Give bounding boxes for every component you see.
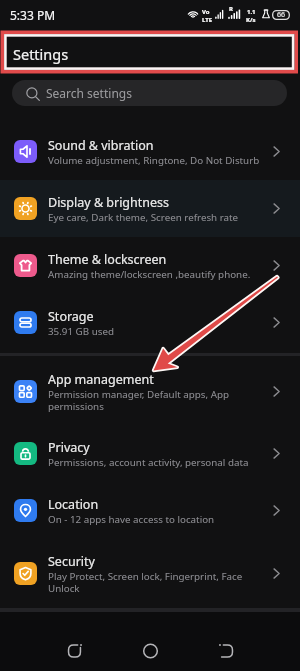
button[interactable]: Security	[0, 539, 300, 608]
button[interactable]: Home	[115, 631, 185, 671]
button[interactable]: Search settings	[12, 80, 287, 106]
staticText: Theme & lockscreen	[48, 251, 167, 268]
staticText: R	[229, 5, 233, 13]
staticText: Storage	[48, 308, 94, 325]
staticText: On - 12 apps have access to location	[48, 513, 215, 526]
staticText: Amazing theme/lockscreen ,beautify phone…	[48, 268, 251, 281]
button[interactable]: Sound & vibration	[0, 123, 300, 180]
staticText: Volume adjustment, Ringtone, Do Not Dist…	[48, 154, 260, 167]
button[interactable]: Display & brightness	[0, 180, 300, 237]
staticText: Vo	[202, 8, 210, 16]
staticText: Display & brightness	[48, 194, 170, 211]
staticText: K/s	[246, 16, 256, 24]
staticText: 35.91 GB used	[48, 325, 114, 338]
staticText: Eye care, Dark theme, Screen refresh rat…	[48, 211, 239, 224]
staticText: Search settings	[46, 85, 132, 101]
staticText: Permissions, account activity, personal …	[48, 456, 249, 469]
staticText: Privacy	[48, 439, 90, 456]
staticText: Settings	[13, 44, 69, 64]
button[interactable]: Theme & lockscreen	[0, 237, 300, 294]
staticText: Security	[48, 553, 95, 570]
staticText: Sound & vibration	[48, 137, 154, 154]
staticText: Permission manager, Default apps, App pe…	[48, 388, 265, 413]
staticText: LTE	[202, 16, 213, 24]
button[interactable]: Storage	[0, 294, 300, 351]
button[interactable]: Back	[190, 631, 260, 671]
staticText: App management	[48, 371, 154, 388]
staticText: 1.1	[247, 8, 256, 16]
button[interactable]: Privacy	[0, 425, 300, 482]
button[interactable]: Location	[0, 482, 300, 539]
staticText: Location	[48, 496, 99, 513]
button[interactable]: Recents	[40, 631, 110, 671]
staticText: 66	[277, 10, 286, 20]
staticText: Play Protect, Screen lock, Fingerprint, …	[48, 570, 265, 595]
staticText: 5:33 PM	[10, 7, 56, 23]
button[interactable]: App management	[0, 358, 300, 425]
